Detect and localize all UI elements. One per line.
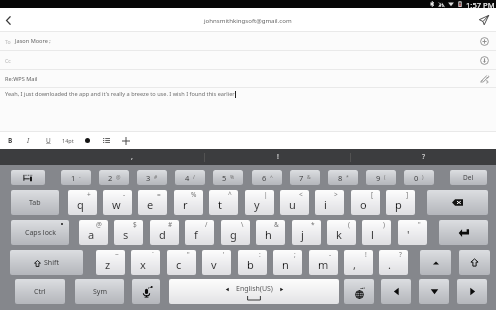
button[interactable]: n	[273, 250, 302, 275]
button[interactable]: r	[174, 190, 203, 215]
button[interactable]: q	[68, 190, 97, 215]
button[interactable]: o	[351, 190, 380, 215]
staticText: *	[311, 220, 315, 229]
staticText: 1	[71, 173, 76, 183]
button[interactable]: Tab	[11, 190, 59, 215]
button[interactable]: y	[245, 190, 274, 215]
button[interactable]: d	[150, 220, 179, 245]
staticText: Ctrl	[34, 287, 46, 297]
button[interactable]: Expand	[476, 52, 492, 68]
staticText: n	[282, 257, 289, 272]
staticText: [	[371, 190, 374, 199]
staticText: )	[383, 220, 385, 229]
staticText: k	[336, 227, 342, 242]
button[interactable]: j	[292, 220, 321, 245]
button[interactable]: l	[362, 220, 391, 245]
button[interactable]: g	[221, 220, 250, 245]
button[interactable]: t	[209, 190, 238, 215]
button[interactable]: Sym	[75, 279, 124, 304]
button[interactable]: ,	[344, 250, 373, 275]
staticText: j	[301, 227, 304, 242]
button[interactable]: b	[238, 250, 267, 275]
staticText: c	[176, 257, 182, 272]
button[interactable]: English(US)	[169, 279, 339, 304]
button[interactable]: p	[386, 190, 415, 215]
button[interactable]: 1	[61, 170, 91, 185]
button[interactable]: I	[19, 132, 37, 149]
staticText: \	[241, 220, 244, 229]
button[interactable]: 0	[404, 170, 434, 185]
button[interactable]: .	[379, 250, 408, 275]
staticText: &	[274, 220, 279, 229]
button[interactable]: 6	[252, 170, 282, 185]
button[interactable]: 7	[290, 170, 320, 185]
button[interactable]: 14pt	[59, 132, 77, 149]
button[interactable]: f	[185, 220, 214, 245]
staticText: 8	[338, 173, 343, 183]
button[interactable]: More options	[117, 132, 134, 149]
button[interactable]: ,	[60, 149, 204, 165]
button[interactable]: Bulleted list	[98, 132, 115, 149]
button[interactable]: Voice input	[132, 279, 160, 304]
staticText: v	[211, 257, 217, 272]
staticText: 2	[108, 173, 113, 183]
staticText: q	[77, 197, 84, 212]
staticText: johnsmithkingsoft@gmail.com	[204, 16, 292, 24]
button[interactable]: s	[114, 220, 143, 245]
button[interactable]: 8	[328, 170, 358, 185]
button[interactable]: z	[96, 250, 125, 275]
button[interactable]: a	[79, 220, 108, 245]
button[interactable]: Del	[450, 170, 487, 185]
button[interactable]: B	[1, 132, 19, 149]
button[interactable]: 9	[366, 170, 396, 185]
button[interactable]: Left	[381, 279, 411, 304]
button[interactable]: w	[103, 190, 132, 215]
staticText: ^	[270, 174, 273, 181]
button[interactable]: m	[309, 250, 338, 275]
staticText: Jason Moore ;	[15, 37, 51, 45]
button[interactable]: 3	[137, 170, 167, 185]
button[interactable]: '	[398, 220, 427, 245]
button[interactable]: !	[205, 149, 350, 165]
button[interactable]: Back	[0, 12, 16, 28]
button[interactable]: 2	[99, 170, 129, 185]
button[interactable]: Right	[457, 279, 487, 304]
button[interactable]: x	[131, 250, 160, 275]
button[interactable]: Text colour	[79, 132, 96, 149]
staticText: -	[329, 250, 332, 259]
button[interactable]: k	[327, 220, 356, 245]
staticText: Cc	[5, 57, 11, 64]
button[interactable]: Change language	[344, 279, 374, 304]
button[interactable]: Attach file	[476, 71, 492, 87]
button[interactable]: e	[138, 190, 167, 215]
button[interactable]: c	[167, 250, 196, 275]
staticText: t	[218, 197, 222, 212]
button[interactable]: v	[202, 250, 231, 275]
button[interactable]: Up	[420, 250, 451, 275]
button[interactable]: U	[39, 132, 57, 149]
staticText: 4	[185, 173, 190, 183]
staticText: m	[318, 257, 329, 272]
button[interactable]: 4	[175, 170, 205, 185]
button[interactable]: u	[280, 190, 309, 215]
button[interactable]: Enter	[439, 220, 488, 245]
staticText: 5	[222, 173, 227, 183]
button[interactable]: ?	[351, 149, 496, 165]
staticText: a	[88, 227, 95, 242]
button[interactable]: Ctrl	[15, 279, 65, 304]
button[interactable]: Shift	[10, 250, 83, 275]
button[interactable]: Down	[419, 279, 449, 304]
staticText: ^	[228, 190, 232, 199]
button[interactable]: Add recipient	[476, 33, 492, 49]
staticText: |	[264, 190, 268, 199]
button[interactable]: 5	[213, 170, 243, 185]
button[interactable]: Caps lock	[11, 220, 69, 245]
button[interactable]: h	[256, 220, 285, 245]
button[interactable]: i	[315, 190, 344, 215]
button[interactable]: Send	[475, 11, 493, 29]
button[interactable]: Keyboard settings	[11, 170, 45, 185]
button[interactable]: Backspace	[427, 190, 488, 215]
button[interactable]: Shift	[459, 250, 490, 275]
staticText: h	[265, 227, 272, 242]
staticText: $	[133, 220, 137, 229]
